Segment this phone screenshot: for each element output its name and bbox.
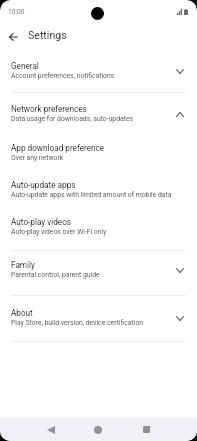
staticText: 10:00 <box>8 8 25 16</box>
staticText: Settings <box>28 29 67 41</box>
staticText: Auto-update apps <box>11 180 76 190</box>
button[interactable]: Auto-update apps <box>0 169 197 206</box>
button[interactable]: Family <box>0 251 197 295</box>
staticText: Parental control, parent guide <box>11 271 100 279</box>
button[interactable]: Recent apps <box>123 418 169 441</box>
staticText: Over any network <box>11 154 64 162</box>
staticText: Play Store, build version, device certif… <box>11 319 144 327</box>
staticText: Data usage for downloads, auto-updates <box>11 115 133 123</box>
staticText: Family <box>11 260 35 270</box>
staticText: About <box>11 308 33 318</box>
staticText: Auto-play videos <box>11 217 72 227</box>
staticText: Account preferences, notifications <box>11 72 115 80</box>
staticText: Network preferences <box>11 104 87 114</box>
button[interactable]: Back <box>3 26 24 47</box>
button[interactable]: About <box>0 296 197 341</box>
button[interactable]: General <box>0 48 197 92</box>
button[interactable]: Network preferences <box>0 93 197 132</box>
staticText: Auto-play videos over Wi-Fi only <box>11 228 107 236</box>
staticText: Auto-update apps with limited amount of … <box>11 191 172 199</box>
staticText: General <box>11 61 39 71</box>
staticText: App download preference <box>11 143 105 153</box>
button[interactable]: Auto-play videos <box>0 206 197 250</box>
button[interactable]: App download preference <box>0 132 197 169</box>
button[interactable]: Home <box>75 418 121 441</box>
button[interactable]: Back <box>28 418 74 441</box>
